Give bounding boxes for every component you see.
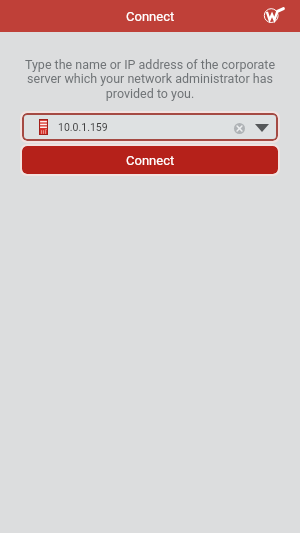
- staticText: Connect: [126, 9, 175, 24]
- button[interactable]: Clear text: [231, 120, 247, 136]
- button[interactable]: Show saved servers: [253, 119, 271, 137]
- staticText: Connect: [126, 153, 175, 168]
- button[interactable]: 10.0.1.159: [22, 113, 278, 141]
- button[interactable]: Wyse logo: [263, 5, 287, 27]
- staticText: Type the name or IP address of the corpo…: [22, 57, 278, 102]
- button[interactable]: Connect: [22, 146, 278, 174]
- staticText: 10.0.1.159: [58, 121, 108, 133]
